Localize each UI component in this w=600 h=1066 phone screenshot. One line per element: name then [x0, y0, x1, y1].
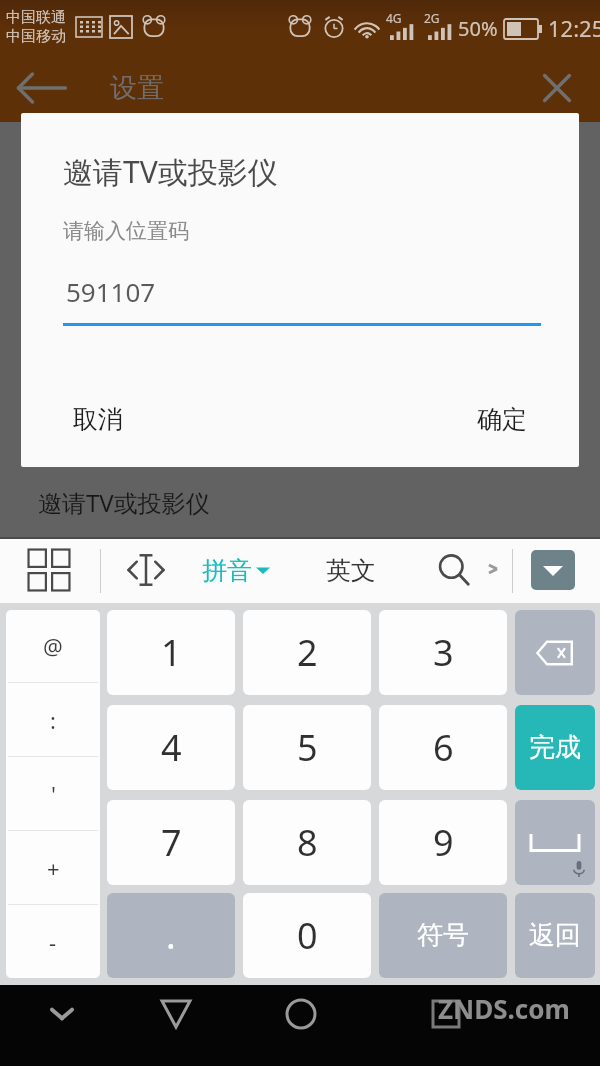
button[interactable]: Hide keyboard — [22, 985, 102, 1066]
button[interactable]: Keyboard layouts — [18, 539, 80, 601]
staticText: 请输入位置码 — [63, 218, 189, 244]
staticText: 完成 — [529, 731, 581, 764]
button[interactable]: 英文 — [318, 537, 384, 603]
button[interactable]: Hide keyboard — [531, 550, 575, 590]
staticText: 英文 — [326, 555, 376, 586]
button[interactable]: + — [6, 831, 100, 904]
button[interactable]: 9 — [379, 800, 507, 885]
button[interactable]: . — [107, 893, 235, 978]
button[interactable]: 6 — [379, 705, 507, 790]
button[interactable]: 返回 — [515, 893, 595, 978]
button[interactable]: 拼音 — [196, 537, 276, 603]
staticText: + — [47, 853, 60, 883]
staticText: 设置 — [110, 71, 164, 105]
staticText: 3 — [433, 628, 454, 677]
staticText: 4 — [161, 723, 182, 772]
staticText: 50% — [458, 15, 498, 42]
staticText: 中国移动 — [6, 27, 66, 46]
button[interactable]: @ — [6, 610, 100, 682]
button[interactable]: Search — [424, 537, 484, 603]
button[interactable]: Space — [515, 800, 595, 885]
button[interactable]: Move cursor — [112, 537, 180, 603]
button[interactable]: 1 — [107, 610, 235, 695]
button[interactable]: Delete — [515, 610, 595, 695]
button[interactable]: - — [6, 905, 100, 978]
button[interactable]: Recents — [400, 985, 492, 1066]
button[interactable]: 4 — [107, 705, 235, 790]
staticText: . — [166, 911, 176, 960]
button[interactable]: 7 — [107, 800, 235, 885]
button[interactable]: 8 — [243, 800, 371, 885]
staticText: 6 — [433, 723, 454, 772]
staticText: 4G — [386, 10, 402, 26]
staticText: 取消 — [73, 404, 123, 435]
button[interactable]: ' — [6, 757, 100, 830]
button[interactable]: 确定 — [461, 392, 543, 447]
button[interactable]: : — [6, 683, 100, 756]
staticText: 确定 — [477, 404, 527, 435]
staticText: 符号 — [417, 919, 469, 952]
staticText: 中国联通 — [6, 8, 66, 27]
button[interactable]: Home — [255, 985, 347, 1066]
staticText: 邀请TV或投影仪 — [38, 486, 210, 519]
button[interactable]: 符号 — [379, 893, 507, 978]
button[interactable]: 3 — [379, 610, 507, 695]
button[interactable]: Back — [130, 985, 222, 1066]
staticText: - — [49, 927, 57, 957]
staticText: 7 — [161, 818, 182, 867]
staticText: @ — [43, 631, 63, 661]
button[interactable]: Close — [530, 61, 584, 115]
staticText: 5 — [297, 723, 318, 772]
staticText: 拼音 — [202, 555, 252, 586]
button[interactable]: 取消 — [57, 392, 139, 447]
staticText: 0 — [297, 911, 318, 960]
staticText: 1 — [161, 628, 182, 677]
staticText: 591107 — [66, 274, 156, 309]
button[interactable]: Back — [14, 60, 70, 116]
staticText: 邀请TV或投影仪 — [63, 151, 278, 192]
staticText: 2G — [424, 10, 440, 26]
staticText: 9 — [433, 818, 454, 867]
staticText: 12:25 — [548, 13, 600, 43]
button[interactable]: 完成 — [515, 705, 595, 790]
staticText: 8 — [297, 818, 318, 867]
staticText: 2 — [297, 628, 318, 677]
button[interactable]: 2 — [243, 610, 371, 695]
button[interactable]: 0 — [243, 893, 371, 978]
staticText: : — [50, 705, 56, 735]
staticText: ZNDS.com — [438, 991, 570, 1026]
staticText: 返回 — [529, 919, 581, 952]
staticText: ' — [51, 779, 56, 809]
button[interactable]: 5 — [243, 705, 371, 790]
